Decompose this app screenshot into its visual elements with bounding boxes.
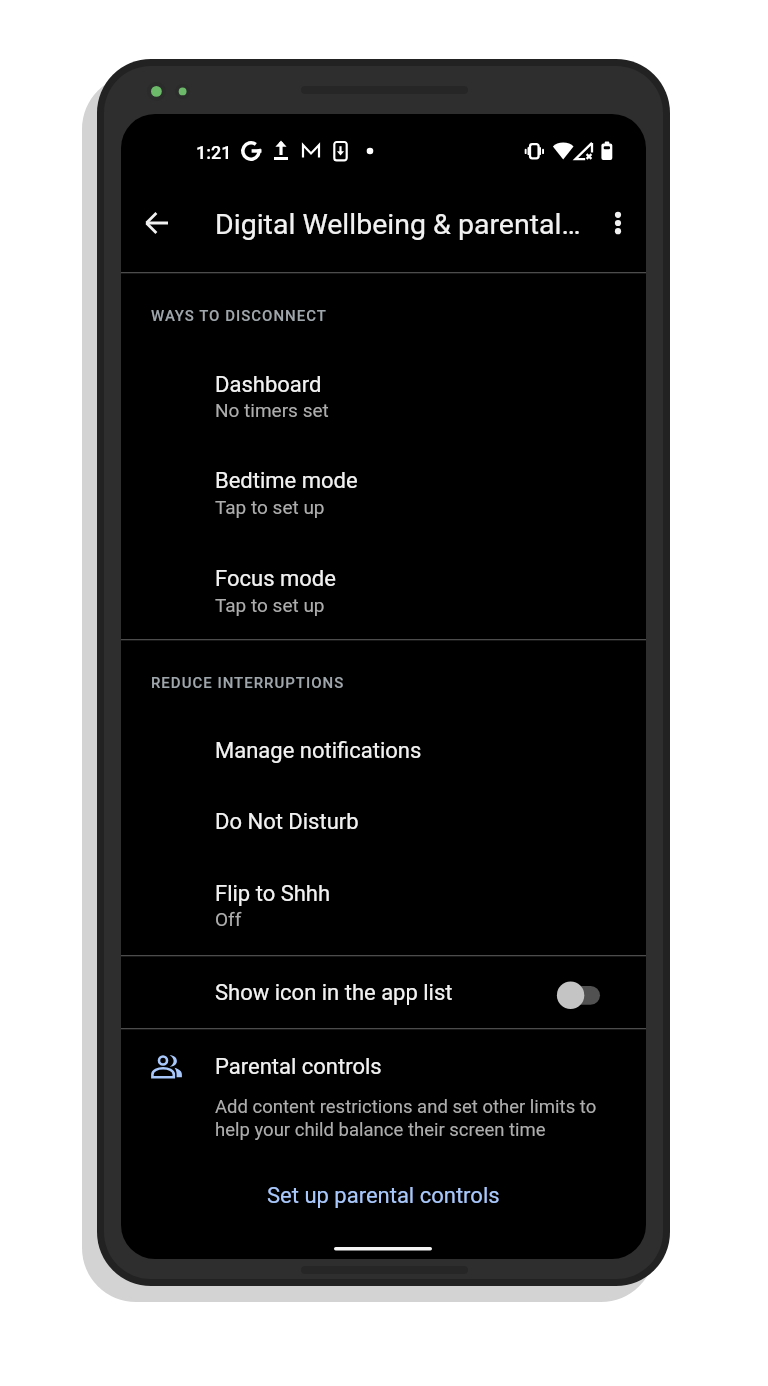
button[interactable]: Flip to Shhh: [121, 846, 646, 946]
button[interactable]: Dashboard: [121, 337, 646, 434]
staticText: Tap to set up: [215, 594, 325, 616]
button[interactable]: Set up parental controls: [121, 1163, 646, 1219]
button[interactable]: Navigate up: [132, 198, 182, 248]
button[interactable]: Show icon in the app list: [121, 956, 646, 1028]
staticText: Tap to set up: [215, 496, 325, 518]
staticText: Parental controls: [215, 1054, 382, 1080]
staticText: No timers set: [215, 399, 329, 421]
button[interactable]: Bedtime mode: [121, 434, 646, 532]
staticText: 1:21: [196, 142, 232, 163]
staticText: Bedtime mode: [215, 468, 358, 494]
staticText: REDUCE INTERRUPTIONS: [151, 674, 345, 692]
button[interactable]: Focus mode: [121, 532, 646, 630]
staticText: Off: [215, 908, 242, 930]
staticText: Set up parental controls: [267, 1183, 500, 1209]
staticText: Flip to Shhh: [215, 881, 331, 907]
staticText: Show icon in the app list: [215, 980, 453, 1006]
button[interactable]: More options: [593, 198, 643, 248]
staticText: WAYS TO DISCONNECT: [151, 307, 327, 325]
staticText: Add content restrictions and set other l…: [215, 1096, 597, 1141]
staticText: Digital Wellbeing & parental…: [215, 208, 581, 241]
staticText: Manage notifications: [215, 738, 422, 764]
staticText: Focus mode: [215, 566, 336, 592]
staticText: Dashboard: [215, 372, 322, 398]
staticText: Do Not Disturb: [215, 809, 359, 835]
button[interactable]: Do Not Disturb: [121, 775, 646, 846]
button[interactable]: Manage notifications: [121, 704, 646, 775]
